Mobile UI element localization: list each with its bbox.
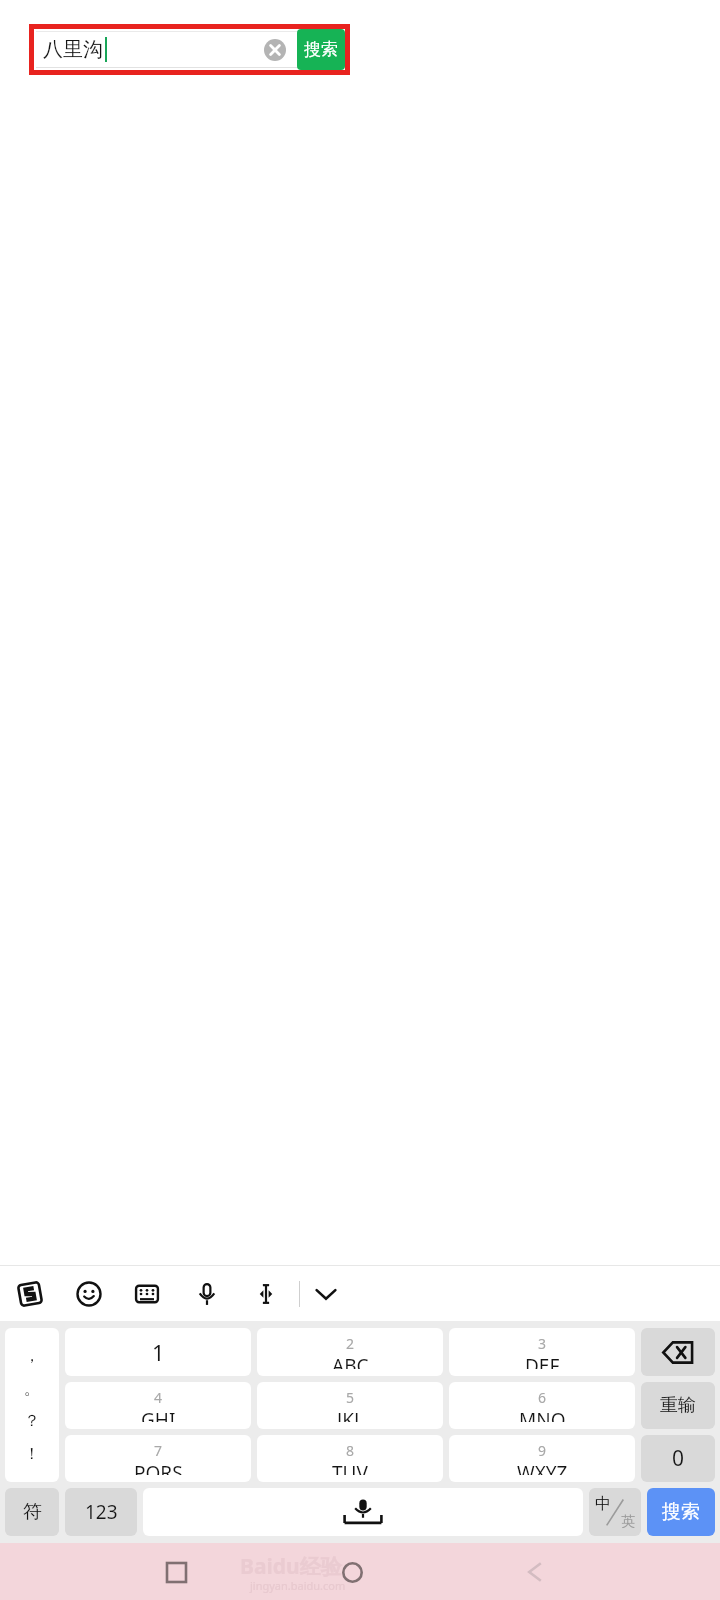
staticText: TUV <box>332 1460 368 1475</box>
button[interactable]: 2 <box>257 1328 443 1376</box>
staticText: 。 <box>24 1379 40 1399</box>
staticText: 英 <box>621 1513 635 1531</box>
button[interactable]: Move cursor <box>246 1274 286 1314</box>
staticText: ！ <box>24 1444 40 1464</box>
button[interactable]: Recent apps <box>152 1548 200 1596</box>
staticText: WXYZ <box>517 1460 568 1475</box>
staticText: 7 <box>154 1441 163 1460</box>
staticText: 八里沟 <box>43 37 103 62</box>
staticText: GHI <box>141 1407 176 1422</box>
staticText: JKL <box>337 1407 364 1422</box>
staticText: 8 <box>346 1441 355 1460</box>
button[interactable]: 符 <box>5 1488 59 1536</box>
button[interactable]: 7 <box>65 1435 251 1482</box>
button[interactable]: Backspace <box>641 1328 715 1376</box>
button[interactable]: 9 <box>449 1435 635 1482</box>
button[interactable]: 1 <box>65 1328 251 1376</box>
staticText: MNO <box>519 1407 566 1422</box>
staticText: 2 <box>346 1334 355 1353</box>
staticText: ， <box>24 1346 40 1366</box>
button[interactable]: Voice input <box>187 1274 227 1314</box>
staticText: Baidu经验 <box>240 1552 342 1581</box>
button[interactable]: Hide keyboard <box>306 1274 346 1314</box>
button[interactable]: 重输 <box>641 1382 715 1429</box>
staticText: 0 <box>672 1444 685 1473</box>
staticText: 重输 <box>660 1394 696 1417</box>
button[interactable]: Space <box>143 1488 583 1536</box>
staticText: 6 <box>538 1388 547 1407</box>
staticText: 1 <box>152 1337 165 1367</box>
button[interactable]: Clear text <box>257 32 293 68</box>
staticText: 9 <box>538 1441 547 1460</box>
button[interactable]: Emoji <box>69 1274 109 1314</box>
button[interactable]: 8 <box>257 1435 443 1482</box>
button[interactable]: Back <box>8 21 64 77</box>
staticText: 3 <box>538 1334 547 1353</box>
button[interactable]: Back <box>512 1548 560 1596</box>
button[interactable]: Sogou input <box>10 1274 50 1314</box>
staticText: jingyan.baidu.com <box>250 1578 346 1593</box>
button[interactable]: 搜索 <box>297 29 345 70</box>
button[interactable]: 八里沟 <box>36 31 344 68</box>
button[interactable]: 5 <box>257 1382 443 1429</box>
staticText: 5 <box>346 1388 355 1407</box>
button[interactable]: 搜索 <box>647 1488 715 1536</box>
button[interactable]: 0 <box>641 1435 715 1482</box>
staticText: 4 <box>154 1388 163 1407</box>
staticText: 符 <box>23 1500 42 1524</box>
staticText: 123 <box>85 1499 118 1525</box>
button[interactable]: Keyboard layout <box>127 1274 167 1314</box>
staticText: ABC <box>332 1353 369 1369</box>
staticText: PQRS <box>134 1460 183 1475</box>
staticText: DEF <box>525 1353 560 1369</box>
button[interactable]: 3 <box>449 1328 635 1376</box>
button[interactable]: Punctuation <box>5 1328 59 1482</box>
button[interactable]: 4 <box>65 1382 251 1429</box>
button[interactable]: Chinese English toggle <box>589 1488 641 1536</box>
staticText: 搜索 <box>662 1500 700 1524</box>
staticText: ？ <box>24 1411 40 1431</box>
button[interactable]: 6 <box>449 1382 635 1429</box>
button[interactable]: Home <box>328 1548 376 1596</box>
button[interactable]: 123 <box>65 1488 137 1536</box>
staticText: 中 <box>595 1494 611 1514</box>
staticText: 搜索 <box>304 39 338 60</box>
